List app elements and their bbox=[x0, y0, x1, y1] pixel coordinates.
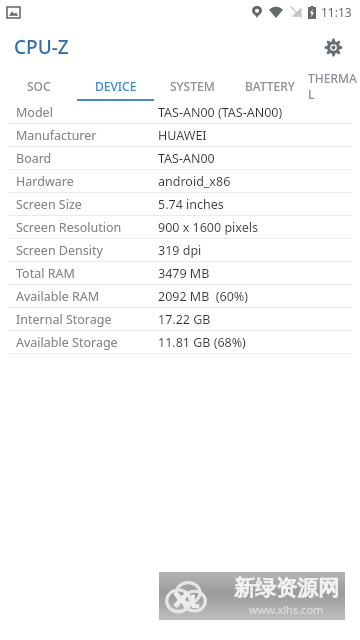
staticText: 11.81 GB (68%) bbox=[158, 334, 246, 351]
staticText: Available Storage bbox=[16, 334, 118, 351]
button[interactable]: Screen Density bbox=[0, 239, 360, 261]
button[interactable]: Available RAM bbox=[0, 285, 360, 307]
button[interactable]: BATTERY bbox=[231, 70, 308, 101]
button[interactable]: Manufacturer bbox=[0, 124, 360, 146]
staticText: BATTERY bbox=[245, 78, 295, 94]
staticText: Hardware bbox=[16, 173, 74, 190]
staticText: 5.74 inches bbox=[158, 196, 224, 213]
button[interactable]: SYSTEM bbox=[154, 70, 231, 101]
staticText: SOC bbox=[27, 78, 51, 94]
button[interactable]: Screen Resolution bbox=[0, 216, 360, 238]
staticText: 900 x 1600 pixels bbox=[158, 219, 258, 236]
staticText: SYSTEM bbox=[170, 78, 215, 94]
staticText: TAS-AN00 (TAS-AN00) bbox=[158, 104, 283, 121]
button[interactable]: Available Storage bbox=[0, 331, 360, 353]
button[interactable]: Settings bbox=[313, 27, 353, 67]
button[interactable]: Internal Storage bbox=[0, 308, 360, 330]
staticText: Available RAM bbox=[16, 288, 100, 305]
staticText: 新绿资源网 bbox=[234, 575, 339, 601]
button[interactable]: Total RAM bbox=[0, 262, 360, 284]
staticText: 3479 MB bbox=[158, 265, 210, 282]
staticText: 2092 MB (60%) bbox=[158, 288, 249, 305]
staticText: www.xlhs.com bbox=[249, 602, 324, 617]
staticText: android_x86 bbox=[158, 173, 231, 190]
staticText: Board bbox=[16, 150, 52, 167]
button[interactable]: Screen Size bbox=[0, 193, 360, 215]
staticText: 319 dpi bbox=[158, 242, 202, 259]
staticText: CPU-Z bbox=[14, 34, 69, 60]
button[interactable]: SOC bbox=[0, 70, 77, 101]
staticText: 17.22 GB bbox=[158, 311, 211, 328]
staticText: Screen Density bbox=[16, 242, 103, 259]
button[interactable]: THERMAL bbox=[308, 70, 360, 101]
button[interactable]: Hardware bbox=[0, 170, 360, 192]
button[interactable]: Board bbox=[0, 147, 360, 169]
staticText: Model bbox=[16, 104, 53, 121]
staticText: DEVICE bbox=[95, 78, 137, 94]
staticText: HUAWEI bbox=[158, 127, 207, 144]
button[interactable]: Model bbox=[0, 101, 360, 123]
button[interactable]: DEVICE bbox=[77, 70, 154, 101]
staticText: 11:13 bbox=[321, 4, 352, 20]
staticText: TAS-AN00 bbox=[158, 150, 215, 167]
staticText: Screen Size bbox=[16, 196, 82, 213]
staticText: THERMAL bbox=[308, 70, 360, 101]
staticText: Internal Storage bbox=[16, 311, 112, 328]
staticText: Manufacturer bbox=[16, 127, 97, 144]
staticText: Screen Resolution bbox=[16, 219, 122, 236]
staticText: Total RAM bbox=[16, 265, 75, 282]
